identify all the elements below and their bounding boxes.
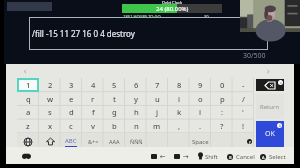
staticText: 5: [112, 80, 117, 90]
button[interactable]: j: [146, 105, 168, 119]
button[interactable]: n: [125, 119, 147, 133]
button[interactable]: 3: [60, 78, 82, 92]
button[interactable]: Left bumper: [151, 152, 166, 161]
staticText: A: [279, 124, 281, 128]
staticText: ': [242, 107, 244, 117]
staticText: c: [69, 121, 73, 131]
button[interactable]: g: [103, 105, 125, 119]
button[interactable]: Space: [146, 134, 254, 149]
button[interactable]: z: [17, 119, 39, 133]
staticText: Space: [192, 138, 209, 146]
button[interactable]: m: [146, 119, 168, 133]
button[interactable]: Language: [17, 134, 39, 149]
staticText: x: [280, 80, 282, 85]
button[interactable]: B: [227, 152, 255, 161]
button[interactable]: Shift: [39, 134, 61, 149]
staticText: Debt Clock: [162, 0, 183, 5]
button[interactable]: ABC: [60, 134, 82, 149]
button[interactable]: ?: [211, 119, 233, 133]
staticText: g: [112, 107, 117, 117]
staticText: p: [220, 94, 225, 104]
staticText: AAA: [109, 138, 120, 145]
staticText: b: [112, 121, 117, 131]
button[interactable]: ': [232, 105, 254, 119]
button[interactable]: 4: [82, 78, 104, 92]
button[interactable]: b: [103, 119, 125, 133]
button[interactable]: 9: [189, 78, 211, 92]
button[interactable]: AAA: [103, 134, 125, 149]
button[interactable]: Backspace: [256, 79, 284, 91]
button[interactable]: 6: [125, 78, 147, 92]
button[interactable]: s: [39, 105, 61, 119]
staticText: ABC: [65, 137, 77, 145]
staticText: B: [229, 155, 232, 160]
staticText: y: [134, 94, 139, 104]
staticText: k: [177, 107, 182, 117]
staticText: :: [221, 107, 224, 117]
staticText: x: [48, 121, 53, 131]
staticText: ←: [160, 153, 166, 161]
staticText: ›: [267, 65, 270, 76]
button[interactable]: 1: [17, 78, 39, 92]
button[interactable]: &+=: [82, 134, 104, 149]
staticText: m: [153, 121, 161, 131]
button[interactable]: ÑÑÑ: [125, 134, 147, 149]
staticText: s: [48, 107, 52, 117]
button[interactable]: r: [82, 92, 104, 106]
staticText: w: [47, 94, 54, 104]
button[interactable]: a: [17, 105, 39, 119]
button[interactable]: k: [168, 105, 190, 119]
button[interactable]: .: [189, 119, 211, 133]
staticText: v: [91, 121, 96, 131]
button[interactable]: d: [60, 105, 82, 119]
button[interactable]: h: [125, 105, 147, 119]
button[interactable]: Return: [256, 94, 284, 119]
staticText: Cancel: [236, 153, 255, 161]
button[interactable]: w: [39, 92, 61, 106]
button[interactable]: -: [232, 78, 254, 92]
button[interactable]: !: [232, 119, 254, 133]
button[interactable]: 5: [103, 78, 125, 92]
button[interactable]: OK: [256, 121, 284, 147]
staticText: -: [242, 80, 245, 90]
staticText: !: [242, 121, 245, 131]
button[interactable]: Controller: [20, 151, 32, 160]
staticText: OK: [265, 129, 275, 139]
button[interactable]: f: [82, 105, 104, 119]
button[interactable]: 0: [211, 78, 233, 92]
staticText: e: [69, 94, 74, 104]
button[interactable]: p: [211, 92, 233, 106]
button[interactable]: x: [39, 119, 61, 133]
button[interactable]: y: [125, 92, 147, 106]
staticText: 1: [26, 80, 31, 90]
staticText: 30/500: [243, 51, 266, 61]
button[interactable]: i: [168, 92, 190, 106]
button[interactable]: v: [82, 119, 104, 133]
button[interactable]: :: [211, 105, 233, 119]
button[interactable]: u: [146, 92, 168, 106]
button[interactable]: e: [60, 92, 82, 106]
button[interactable]: Shift: [198, 152, 218, 161]
button[interactable]: o: [189, 92, 211, 106]
staticText: 2: [48, 80, 53, 90]
button[interactable]: 8: [168, 78, 190, 92]
staticText: Shift: [205, 153, 218, 161]
button[interactable]: ,: [168, 119, 190, 133]
staticText: z: [26, 121, 30, 131]
button[interactable]: 2: [39, 78, 61, 92]
button[interactable]: 7: [146, 78, 168, 92]
staticText: 24 (80.00%): [156, 5, 189, 13]
button[interactable]: t: [103, 92, 125, 106]
button[interactable]: /: [232, 92, 254, 106]
staticText: .: [199, 121, 202, 131]
button[interactable]: q: [17, 92, 39, 106]
staticText: 8: [177, 80, 182, 90]
staticText: 1: [26, 80, 31, 90]
staticText: 3: [69, 80, 74, 90]
staticText: ÑÑÑ: [130, 138, 143, 145]
button[interactable]: l: [189, 105, 211, 119]
staticText: -1851 HOURS TO GO: [122, 14, 161, 19]
button[interactable]: c: [60, 119, 82, 133]
button[interactable]: A: [260, 152, 286, 161]
button[interactable]: Right bumper: [174, 152, 189, 161]
